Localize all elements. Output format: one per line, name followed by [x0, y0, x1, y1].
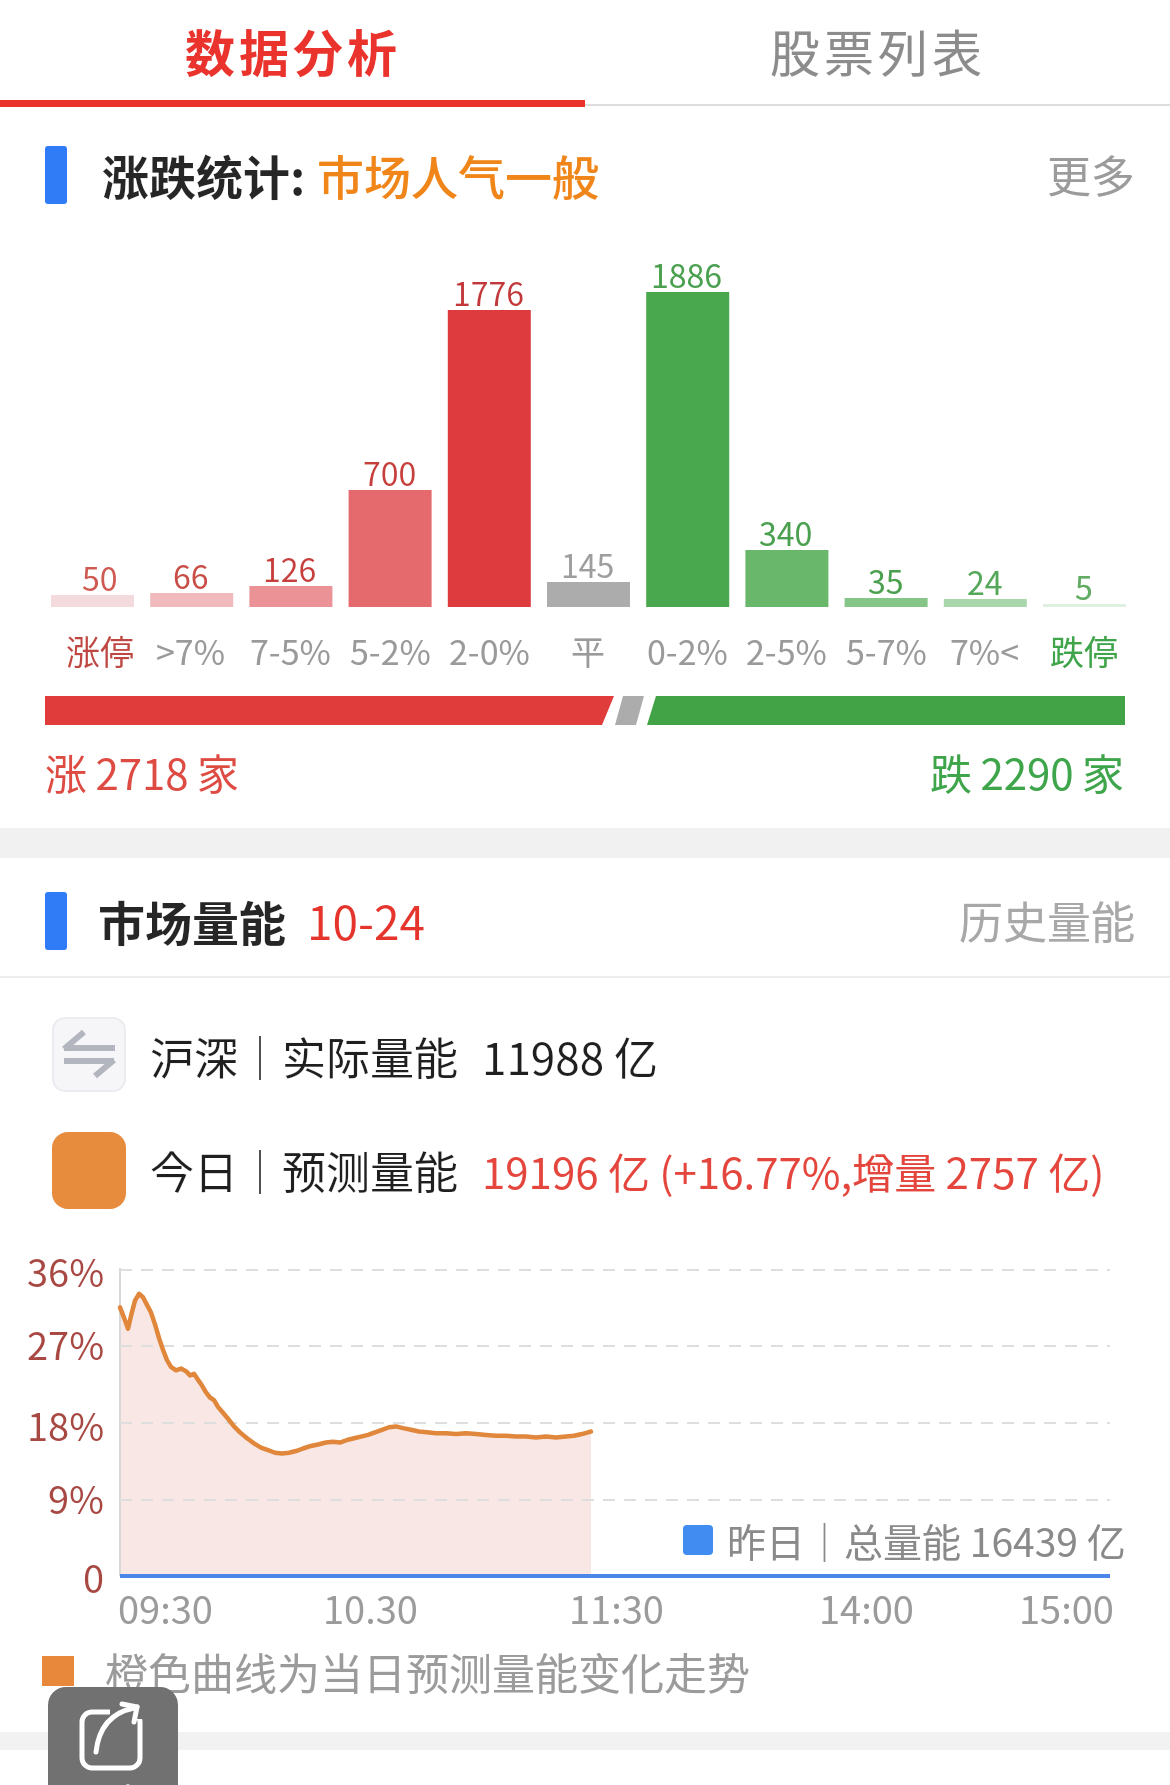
staticText: 分享 [83, 1775, 143, 1785]
staticText: 14:00 [819, 1580, 914, 1635]
staticText: 今日｜预测量能 [150, 1138, 458, 1202]
staticText: 更多 [1047, 142, 1135, 206]
staticText: 9% [48, 1470, 105, 1525]
staticText: >7% [156, 626, 226, 675]
staticText: 7-5% [250, 626, 331, 675]
staticText: 涨跌统计: [102, 140, 306, 208]
staticText: 15:00 [1019, 1580, 1114, 1635]
staticText: 0-2% [647, 626, 728, 675]
staticText: 36% [27, 1243, 105, 1298]
staticText: 涨停 [66, 626, 134, 675]
staticText: 66 [173, 552, 209, 598]
staticText: 跌停 [1050, 626, 1118, 675]
staticText: 19196 亿 (+16.77%,增量 2757 亿) [482, 1140, 1105, 1201]
staticText: 50 [82, 554, 118, 600]
staticText: 昨日｜总量能 16439 亿 [727, 1512, 1126, 1568]
staticText: 11:30 [569, 1580, 664, 1635]
staticText: 5-2% [350, 626, 431, 675]
staticText: 340 [759, 509, 813, 555]
staticText: 24 [967, 558, 1003, 604]
staticText: 35 [868, 557, 904, 603]
staticText: 5-7% [846, 626, 927, 675]
button[interactable]: 股票列表 [585, 0, 1170, 100]
staticText: 2-0% [449, 626, 530, 675]
staticText: 数据分析 [185, 14, 401, 86]
staticText: 126 [263, 545, 317, 591]
staticText: 涨 2718 家 [45, 741, 240, 802]
staticText: 145 [561, 541, 615, 587]
staticText: 跌 2290 家 [930, 741, 1125, 802]
staticText: 7%< [950, 626, 1020, 675]
staticText: 10.30 [323, 1580, 418, 1635]
staticText: 18% [27, 1397, 105, 1452]
staticText: 股票列表 [770, 14, 986, 86]
button[interactable]: 更多 [1005, 139, 1135, 209]
staticText: 09:30 [118, 1580, 213, 1635]
button[interactable]: 分享 [48, 1687, 178, 1785]
staticText: 市场人气一般 [317, 140, 599, 208]
staticText: 10-24 [307, 887, 426, 954]
staticText: 沪深｜实际量能 [150, 1024, 458, 1088]
staticText: 历史量能 [959, 888, 1135, 952]
staticText: 0 [83, 1549, 105, 1604]
staticText: 橙色曲线为当日预测量能变化走势 [105, 1640, 750, 1702]
staticText: 平 [571, 626, 605, 675]
button[interactable]: 历史量能 [915, 885, 1135, 955]
staticText: 27% [27, 1316, 105, 1371]
staticText: 市场量能 [98, 886, 286, 954]
staticText: 700 [363, 449, 417, 495]
staticText: 2-5% [746, 626, 827, 675]
staticText: 5 [1075, 563, 1093, 609]
staticText: 1886 [651, 251, 723, 297]
staticText: 1776 [453, 269, 525, 315]
button[interactable]: 数据分析 [0, 0, 585, 100]
staticText: 11988 亿 [482, 1024, 658, 1088]
